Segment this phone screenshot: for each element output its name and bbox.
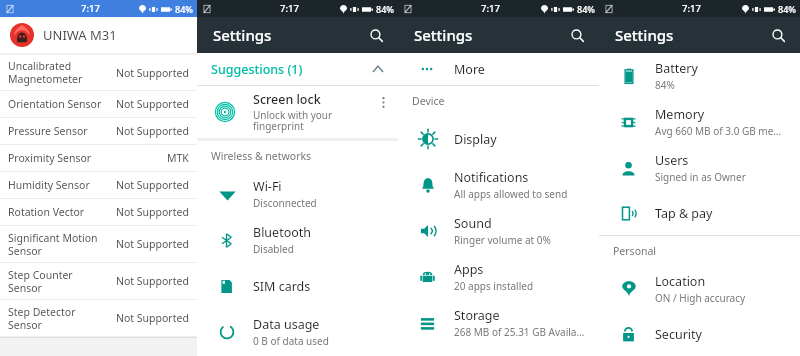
button[interactable]: Step Detector Sensor <box>0 300 197 337</box>
staticText: Settings <box>414 25 473 45</box>
button[interactable]: Battery <box>599 53 800 99</box>
staticText: 7:17 <box>81 2 100 15</box>
staticText: 7:17 <box>682 2 701 15</box>
button[interactable]: Sound <box>398 208 599 254</box>
staticText: Avg 660 MB of 3.0 GB memo… <box>655 124 786 138</box>
button[interactable]: Significant Motion Sensor <box>0 226 197 263</box>
staticText: Orientation Sensor <box>8 97 116 111</box>
staticText: 84% <box>577 3 595 15</box>
staticText: UNIWA M31 <box>43 26 117 44</box>
button[interactable]: Apps <box>398 254 599 300</box>
staticText: Not Supported <box>116 97 189 111</box>
staticText: Display <box>454 131 497 148</box>
staticText: Wireless & networks <box>211 149 312 163</box>
staticText: All apps allowed to send <box>454 187 568 201</box>
button[interactable]: Search <box>565 23 589 47</box>
button[interactable]: UNIWA M31 <box>0 17 197 53</box>
staticText: 84% <box>778 3 796 15</box>
staticText: Memory <box>655 106 705 123</box>
staticText: 84% <box>376 3 394 15</box>
staticText: Location <box>655 273 706 290</box>
staticText: Not Supported <box>116 124 189 138</box>
button[interactable]: Humidity Sensor <box>0 172 197 199</box>
button[interactable]: Wi-Fi <box>197 171 398 217</box>
staticText: Step Detector Sensor <box>8 305 116 332</box>
button[interactable]: Pressure Sensor <box>0 118 197 145</box>
button[interactable]: Tap & pay <box>599 191 800 235</box>
button[interactable]: Uncalibrated Magnetometer <box>0 55 197 91</box>
staticText: Settings <box>615 25 674 45</box>
button[interactable]: Rotation Vector <box>0 199 197 226</box>
staticText: Significant Motion Sensor <box>8 231 116 258</box>
staticText: Not Supported <box>116 66 189 80</box>
staticText: Sound <box>454 215 492 232</box>
button[interactable]: Step Counter Sensor <box>0 263 197 300</box>
staticText: More <box>454 61 485 78</box>
staticText: Bluetooth <box>253 224 312 241</box>
staticText: MTK <box>167 151 189 165</box>
other: Collapse <box>368 59 388 79</box>
button[interactable]: Orientation Sensor <box>0 91 197 118</box>
staticText: Apps <box>454 261 484 278</box>
staticText: 20 apps installed <box>454 279 534 293</box>
button[interactable]: Storage <box>398 300 599 346</box>
button[interactable]: Search <box>364 23 388 47</box>
staticText: Suggestions (1) <box>211 61 303 78</box>
staticText: Tap & pay <box>655 205 713 222</box>
staticText: Battery <box>655 60 698 77</box>
staticText: Data usage <box>253 316 320 333</box>
staticText: Pressure Sensor <box>8 124 116 138</box>
staticText: Disconnected <box>253 196 317 210</box>
button[interactable]: Users <box>599 145 800 191</box>
staticText: Signed in as Owner <box>655 170 746 184</box>
staticText: ON / High accuracy <box>655 291 746 305</box>
button[interactable]: More <box>398 53 599 85</box>
button[interactable]: Security <box>599 312 800 356</box>
staticText: Unlock with your fingerprint <box>253 108 333 133</box>
button[interactable]: Proximity Sensor <box>0 145 197 172</box>
button[interactable]: More options <box>375 94 391 110</box>
staticText: Personal <box>613 244 657 258</box>
staticText: Step Counter Sensor <box>8 268 116 295</box>
staticText: Security <box>655 326 702 343</box>
staticText: Humidity Sensor <box>8 178 116 192</box>
staticText: Not Supported <box>116 205 189 219</box>
button[interactable]: Suggestions (1) <box>197 53 398 85</box>
staticText: Proximity Sensor <box>8 151 167 165</box>
staticText: Storage <box>454 307 500 324</box>
staticText: Rotation Vector <box>8 205 116 219</box>
button[interactable]: Memory <box>599 99 800 145</box>
button[interactable]: SIM cards <box>197 263 398 309</box>
staticText: SIM cards <box>253 278 311 295</box>
button[interactable]: Search <box>766 23 790 47</box>
staticText: Disabled <box>253 242 294 256</box>
staticText: Settings <box>213 25 272 45</box>
staticText: 0 B of data used <box>253 334 329 348</box>
button[interactable]: Display <box>398 116 599 162</box>
staticText: 84% <box>655 78 675 92</box>
staticText: 268 MB of 25.31 GB Available <box>454 325 585 339</box>
button[interactable]: Screen lock <box>197 86 398 138</box>
button[interactable]: Bluetooth <box>197 217 398 263</box>
staticText: Not Supported <box>116 311 189 325</box>
staticText: Notifications <box>454 169 529 186</box>
staticText: Not Supported <box>116 274 189 288</box>
button[interactable]: Location <box>599 266 800 312</box>
staticText: Not Supported <box>116 178 189 192</box>
button[interactable]: Data usage <box>197 309 398 355</box>
staticText: Ringer volume at 0% <box>454 233 551 247</box>
staticText: 7:17 <box>280 2 299 15</box>
staticText: 7:17 <box>481 2 500 15</box>
staticText: Device <box>412 94 445 108</box>
staticText: Wi-Fi <box>253 178 282 195</box>
button[interactable]: Notifications <box>398 162 599 208</box>
staticText: Uncalibrated Magnetometer <box>8 59 116 86</box>
staticText: Screen lock <box>253 91 321 108</box>
staticText: Users <box>655 152 689 169</box>
staticText: Not Supported <box>116 237 189 251</box>
staticText: 84% <box>175 3 193 15</box>
